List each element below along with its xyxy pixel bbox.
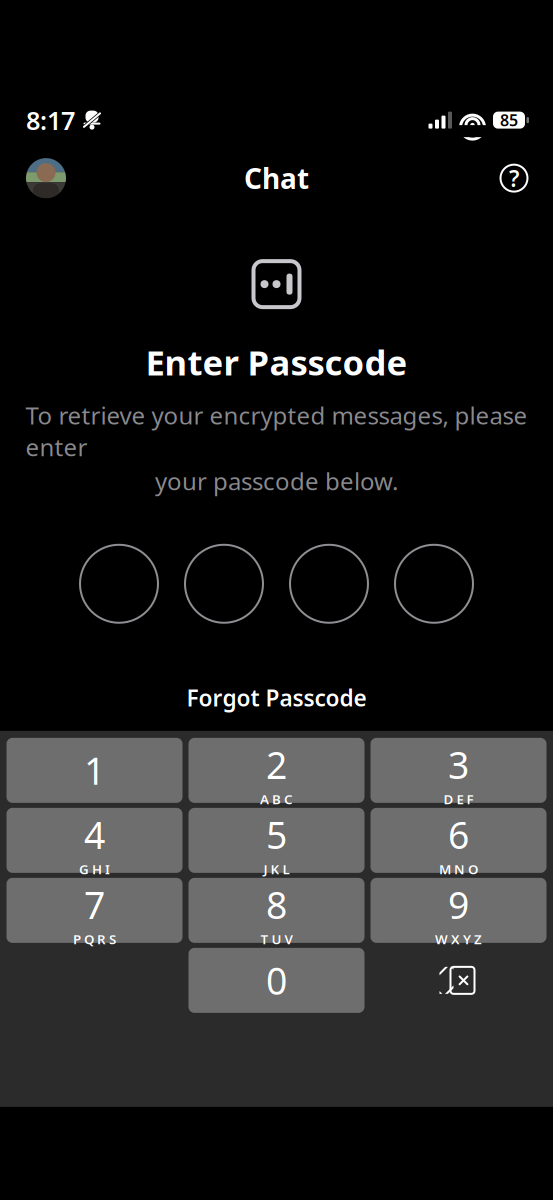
staticText: Forgot Passcode: [186, 683, 366, 713]
button[interactable]: 5: [188, 808, 364, 873]
staticText: 8: [266, 880, 287, 929]
button[interactable]: 1: [6, 738, 182, 803]
staticText: 85: [500, 109, 518, 131]
button[interactable]: 0: [188, 948, 364, 1013]
staticText: D E F: [443, 790, 473, 808]
button[interactable]: Help: [494, 158, 534, 198]
button[interactable]: Profile: [26, 158, 66, 198]
staticText: 9: [448, 880, 469, 929]
staticText: 4: [84, 810, 105, 859]
button[interactable]: 3: [370, 738, 546, 803]
button[interactable]: Forgot Passcode: [168, 673, 384, 723]
button[interactable]: 4: [6, 808, 182, 873]
staticText: P Q R S: [73, 930, 116, 948]
staticText: 5: [266, 810, 287, 859]
staticText: W X Y Z: [435, 930, 482, 948]
staticText: ?: [509, 163, 519, 193]
button[interactable]: Delete: [370, 948, 546, 1013]
staticText: 0: [266, 956, 287, 1005]
staticText: 1: [84, 746, 105, 795]
staticText: 6: [448, 810, 469, 859]
button[interactable]: 9: [370, 878, 546, 943]
staticText: 2: [266, 740, 287, 789]
staticText: 3: [448, 740, 469, 789]
button[interactable]: 8: [188, 878, 364, 943]
staticText: Enter Passcode: [145, 339, 407, 385]
button[interactable]: 6: [370, 808, 546, 873]
staticText: 8:17: [26, 103, 75, 137]
staticText: J K L: [263, 860, 289, 878]
staticText: A B C: [260, 790, 293, 808]
staticText: T U V: [260, 930, 292, 948]
staticText: Chat: [244, 159, 309, 197]
staticText: M N O: [439, 860, 478, 878]
staticText: 7: [84, 880, 105, 929]
staticText: your passcode below.: [155, 465, 398, 497]
staticText: To retrieve your encrypted messages, ple…: [25, 399, 527, 463]
button[interactable]: 2: [188, 738, 364, 803]
staticText: G H I: [79, 860, 110, 878]
button[interactable]: 7: [6, 878, 182, 943]
